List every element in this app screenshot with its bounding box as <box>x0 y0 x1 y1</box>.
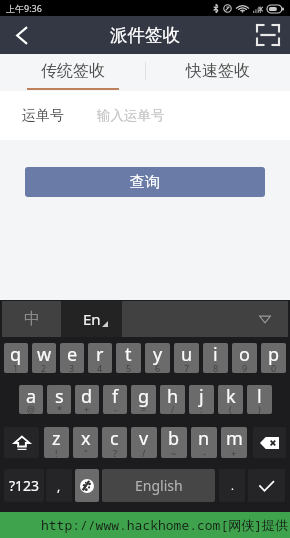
staticText: s <box>55 385 64 409</box>
button[interactable]: Shift <box>4 427 39 458</box>
staticText: + <box>84 403 90 414</box>
button[interactable]: b <box>161 427 187 458</box>
button[interactable]: t <box>116 343 141 373</box>
staticText: 9 <box>242 362 248 373</box>
button[interactable]: i <box>203 343 228 373</box>
button[interactable]: v <box>131 427 157 458</box>
button[interactable]: j <box>189 385 214 414</box>
button[interactable]: p <box>261 343 286 373</box>
button[interactable]: Enter <box>248 469 285 502</box>
button[interactable]: Backspace <box>253 427 286 458</box>
button[interactable]: , <box>46 469 72 502</box>
staticText: o <box>239 343 250 367</box>
staticText: 1 <box>13 362 19 373</box>
button[interactable]: z <box>44 427 69 458</box>
staticText: 0 <box>271 362 277 373</box>
staticText: j <box>199 385 204 409</box>
staticText: 输入运单号 <box>97 107 165 124</box>
button[interactable]: w <box>32 343 56 373</box>
staticText: 快速签收 <box>186 61 250 81</box>
staticText: 运单号 <box>22 107 64 125</box>
staticText: / <box>142 447 146 458</box>
staticText: = <box>141 403 147 414</box>
staticText: 上午9:36 <box>6 2 42 14</box>
staticText: . <box>231 478 234 493</box>
staticText: 2 <box>41 362 47 373</box>
button[interactable]: En <box>61 301 122 337</box>
staticText: d <box>81 385 93 409</box>
staticText: a <box>26 385 37 409</box>
staticText: http://www.hackhome.com[网侠]提供 <box>41 516 289 534</box>
staticText: q <box>10 343 22 367</box>
staticText: k <box>226 385 236 409</box>
staticText: w <box>37 343 52 367</box>
staticText: ~ <box>171 447 177 458</box>
staticText: English <box>135 476 183 495</box>
staticText: g <box>138 385 150 409</box>
staticText: 7 <box>184 362 190 373</box>
button[interactable]: y <box>145 343 170 373</box>
button[interactable]: m <box>221 427 247 458</box>
staticText: 6 <box>155 362 161 373</box>
staticText: u <box>181 343 193 367</box>
button[interactable]: g <box>131 385 156 414</box>
staticText: r <box>96 343 104 367</box>
button[interactable]: Change language <box>75 469 99 502</box>
staticText: c <box>110 427 119 451</box>
button[interactable]: English <box>102 469 215 502</box>
button[interactable]: Scan <box>246 16 290 54</box>
button[interactable]: k <box>218 385 243 414</box>
staticText: , <box>57 478 61 494</box>
staticText: ) <box>258 403 261 414</box>
button[interactable]: 运单号 <box>0 91 290 140</box>
button[interactable]: a <box>19 385 43 414</box>
button[interactable]: f <box>103 385 127 414</box>
staticText: 派件签收 <box>110 24 180 46</box>
staticText: 3 <box>69 362 75 373</box>
staticText: e <box>67 343 78 367</box>
staticText: b <box>168 427 180 451</box>
staticText: ! <box>55 447 58 458</box>
button[interactable]: h <box>160 385 185 414</box>
staticText: m <box>226 427 243 451</box>
staticText: t <box>125 343 132 367</box>
staticText: z <box>52 427 61 451</box>
button[interactable]: o <box>232 343 257 373</box>
staticText: + <box>231 447 237 458</box>
staticText: y <box>153 343 163 367</box>
staticText: - <box>114 403 117 414</box>
button[interactable]: ?123 <box>4 469 44 502</box>
button[interactable]: r <box>88 343 112 373</box>
button[interactable]: c <box>102 427 127 458</box>
staticText: 中 <box>24 309 40 329</box>
button[interactable]: . <box>219 469 245 502</box>
staticText: - <box>203 447 206 458</box>
staticText: * <box>57 403 62 414</box>
button[interactable]: n <box>191 427 217 458</box>
staticText: p <box>268 343 280 367</box>
staticText: x <box>81 427 91 451</box>
staticText: 传统签收 <box>41 61 105 81</box>
button[interactable]: 查询 <box>25 167 265 197</box>
button[interactable]: Hide keyboard <box>259 313 271 325</box>
staticText: 8 <box>213 362 219 373</box>
button[interactable]: 传统签收 <box>0 54 145 91</box>
button[interactable]: e <box>60 343 84 373</box>
staticText: 5 <box>126 362 132 373</box>
button[interactable]: l <box>247 385 272 414</box>
staticText: " <box>84 447 88 458</box>
button[interactable]: u <box>174 343 199 373</box>
button[interactable]: Back <box>0 16 44 54</box>
button[interactable]: 中 <box>2 301 61 337</box>
button[interactable]: q <box>4 343 28 373</box>
staticText: f <box>112 385 119 409</box>
staticText: ?123 <box>9 476 40 495</box>
button[interactable]: d <box>75 385 99 414</box>
staticText: h <box>167 385 179 409</box>
button[interactable]: x <box>73 427 98 458</box>
button[interactable]: 快速签收 <box>145 54 290 91</box>
staticText: n <box>198 427 210 451</box>
staticText: ? <box>113 447 117 458</box>
staticText: i <box>213 343 218 367</box>
button[interactable]: s <box>47 385 71 414</box>
